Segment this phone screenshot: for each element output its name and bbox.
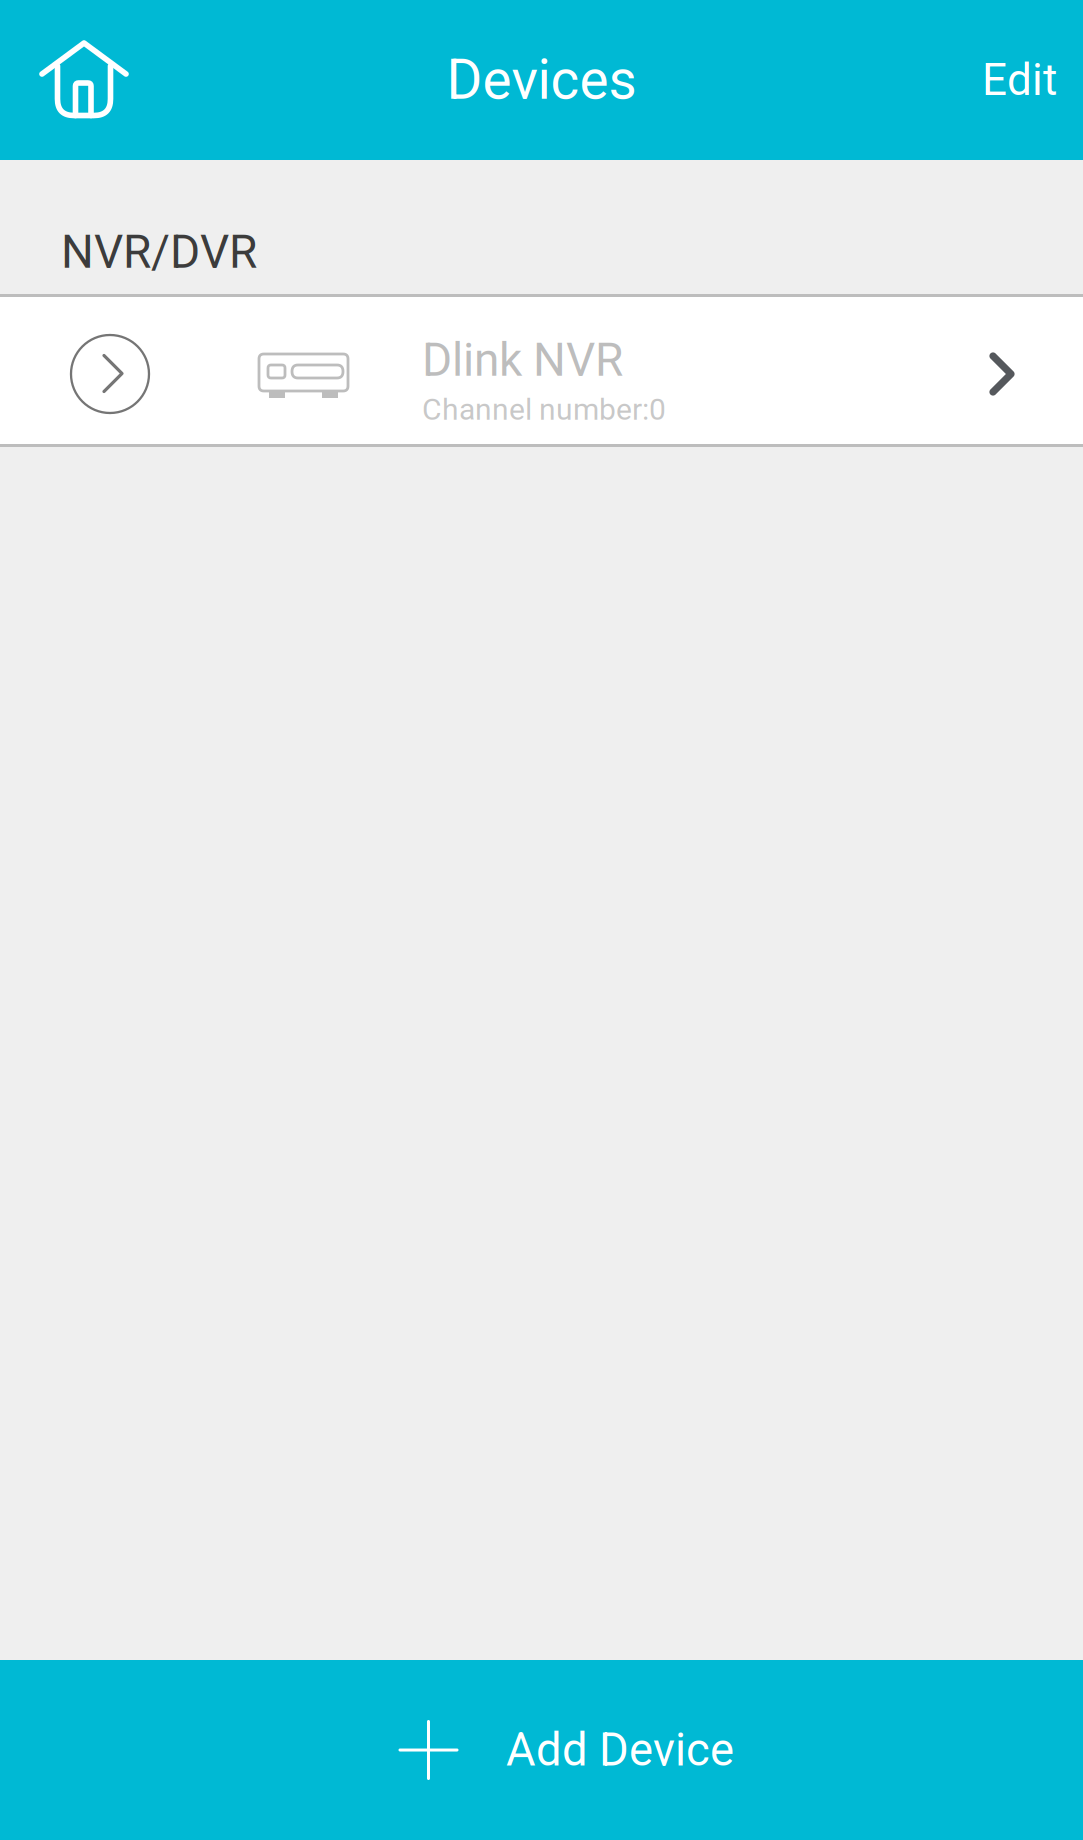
- button[interactable]: Edit: [956, 28, 1083, 132]
- staticText: Channel number:0: [422, 392, 666, 427]
- staticText: NVR/DVR: [61, 225, 257, 279]
- staticText: Dlink NVR: [422, 333, 623, 387]
- button[interactable]: Dlink NVR: [0, 297, 1083, 447]
- button[interactable]: Add Device: [0, 1660, 1083, 1840]
- staticText: Add Device: [506, 1723, 734, 1776]
- button[interactable]: Home: [0, 23, 147, 137]
- staticText: Edit: [982, 54, 1057, 106]
- staticText: Devices: [446, 48, 636, 112]
